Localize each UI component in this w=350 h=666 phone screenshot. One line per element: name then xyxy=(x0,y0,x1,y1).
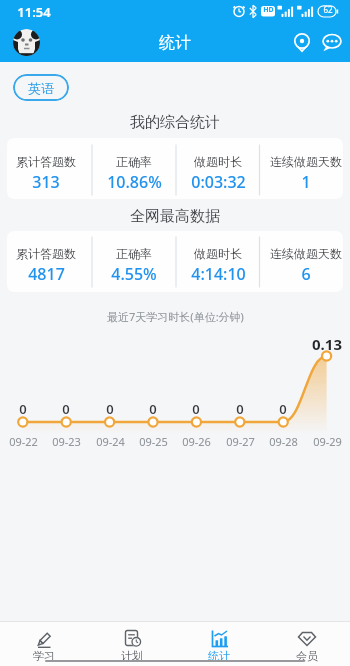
button[interactable]: 统计 xyxy=(175,622,263,666)
staticText: 正确率 xyxy=(116,246,152,261)
staticText: 0:03:32 xyxy=(191,171,246,193)
staticText: 313 xyxy=(32,171,60,193)
staticText: 我的综合统计 xyxy=(130,113,220,132)
staticText: 学习 xyxy=(33,649,55,663)
staticText: 正确率 xyxy=(116,154,152,169)
button[interactable]: 会员 xyxy=(263,622,350,666)
staticText: 1 xyxy=(301,171,311,193)
staticText: 全网最高数据 xyxy=(130,207,220,226)
staticText: 0 xyxy=(106,400,114,416)
staticText: 4:14:10 xyxy=(191,263,246,285)
staticText: 统计 xyxy=(159,33,191,53)
staticText: 0.13 xyxy=(312,334,342,350)
staticText: HD xyxy=(263,5,274,14)
button[interactable] xyxy=(288,28,318,56)
button[interactable]: 学习 xyxy=(0,622,88,666)
staticText: 连续做题天数 xyxy=(270,154,342,169)
staticText: 做题时长 xyxy=(194,246,242,261)
staticText: 09-23 xyxy=(52,434,81,449)
staticText: 09-29 xyxy=(313,434,342,449)
staticText: 0 xyxy=(236,400,244,416)
staticText: 英语 xyxy=(28,80,54,96)
staticText: 09-28 xyxy=(269,434,298,449)
staticText: 4817 xyxy=(28,263,65,285)
button[interactable]: 英语 xyxy=(13,74,69,101)
button[interactable]: 计划 xyxy=(88,622,176,666)
staticText: 09-24 xyxy=(96,434,125,449)
staticText: 09-25 xyxy=(139,434,168,449)
staticText: 11:54 xyxy=(17,3,51,20)
staticText: 连续做题天数 xyxy=(270,246,342,261)
staticText: 09-26 xyxy=(182,434,211,449)
staticText: 会员 xyxy=(296,649,318,663)
staticText: 统计 xyxy=(208,649,230,663)
staticText: 0 xyxy=(62,400,70,416)
staticText: 09-27 xyxy=(226,434,255,449)
staticText: 0 xyxy=(149,400,157,416)
button[interactable] xyxy=(320,28,348,56)
staticText: 6 xyxy=(301,263,311,285)
staticText: 0 xyxy=(279,400,287,416)
staticText: 0 xyxy=(192,400,200,416)
staticText: 累计答题数 xyxy=(16,154,76,169)
staticText: 做题时长 xyxy=(194,154,242,169)
button[interactable] xyxy=(13,29,40,56)
staticText: 62 xyxy=(323,4,333,15)
staticText: 计划 xyxy=(121,649,143,663)
staticText: 最近7天学习时长(单位:分钟) xyxy=(107,309,244,324)
staticText: 4.55% xyxy=(111,263,157,285)
staticText: 累计答题数 xyxy=(16,246,76,261)
staticText: 10.86% xyxy=(107,171,162,193)
staticText: 09-22 xyxy=(9,434,38,449)
staticText: 0 xyxy=(19,400,27,416)
